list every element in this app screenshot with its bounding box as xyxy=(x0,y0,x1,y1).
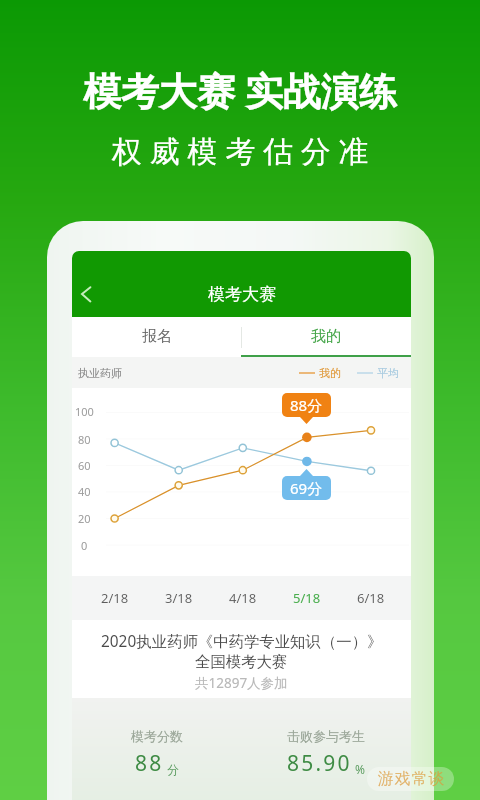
staticText: 模考分数 xyxy=(131,728,183,744)
staticText: 权 威 模 考 估 分 准 xyxy=(112,130,369,171)
staticText: 我的 xyxy=(311,327,341,346)
staticText: 85.90 xyxy=(287,749,352,778)
staticText: 击败参与考生 xyxy=(287,728,365,744)
staticText: 100 xyxy=(75,404,94,419)
staticText: 5/18 xyxy=(293,589,321,607)
staticText: 6/18 xyxy=(357,589,385,607)
staticText: 分 xyxy=(167,762,179,777)
staticText: 88 xyxy=(135,749,164,778)
staticText: 60 xyxy=(78,458,91,473)
button[interactable]: Back xyxy=(76,284,96,304)
staticText: 报名 xyxy=(142,327,172,346)
staticText: 88分 xyxy=(290,395,323,415)
button[interactable]: 报名 xyxy=(72,317,241,357)
staticText: 3/18 xyxy=(165,589,193,607)
staticText: 共12897人参加 xyxy=(195,674,288,692)
staticText: 游戏常谈 xyxy=(377,769,445,789)
staticText: 2020执业药师《中药学专业知识（一）》 xyxy=(101,631,383,652)
staticText: 执业药师 xyxy=(78,366,122,380)
staticText: 全国模考大赛 xyxy=(195,652,288,671)
staticText: 80 xyxy=(78,432,91,447)
button[interactable]: 我的 xyxy=(241,317,411,357)
staticText: 20 xyxy=(78,511,91,526)
staticText: 模考大赛 实战演练 xyxy=(83,64,397,116)
staticText: 我的 xyxy=(319,366,341,380)
staticText: 69分 xyxy=(290,478,323,498)
staticText: 40 xyxy=(78,484,91,499)
staticText: 模考大赛 xyxy=(208,284,276,305)
staticText: 0 xyxy=(81,538,88,553)
staticText: 平均 xyxy=(377,366,399,380)
staticText: 2/18 xyxy=(101,589,129,607)
staticText: 4/18 xyxy=(229,589,257,607)
staticText: % xyxy=(355,761,365,777)
